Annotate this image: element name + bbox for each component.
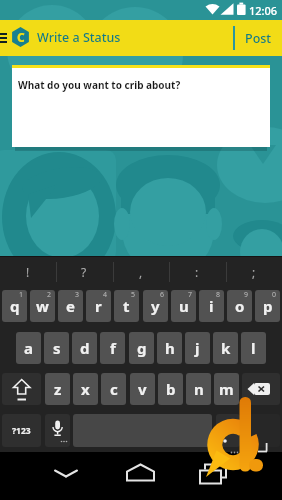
staticText: i	[209, 296, 214, 316]
button[interactable]	[195, 460, 235, 490]
button[interactable]: p	[255, 290, 280, 322]
button[interactable]: ?123	[2, 414, 41, 447]
button[interactable]	[45, 414, 70, 447]
staticText: 8	[216, 290, 221, 300]
staticText: p	[263, 296, 273, 316]
staticText: 0	[272, 290, 277, 300]
staticText: What do you want to crib about?	[18, 78, 181, 92]
staticText: ;	[252, 264, 256, 280]
button[interactable]: f	[100, 332, 125, 364]
staticText: 7	[188, 290, 193, 300]
button[interactable]: y	[143, 290, 168, 322]
button[interactable]: v	[130, 373, 155, 405]
staticText: b	[166, 379, 176, 399]
button[interactable]: a	[16, 332, 41, 364]
button[interactable]: C	[11, 27, 30, 47]
button[interactable]: q	[2, 290, 27, 322]
staticText: 5	[131, 290, 136, 300]
button[interactable]	[121, 460, 161, 490]
button[interactable]: k	[213, 332, 238, 364]
button[interactable]: b	[158, 373, 183, 405]
staticText: n	[194, 379, 204, 399]
staticText: ?	[81, 264, 87, 280]
button[interactable]: j	[185, 332, 210, 364]
button[interactable]: x	[73, 373, 98, 405]
button[interactable]	[73, 414, 212, 447]
button[interactable]: n	[186, 373, 211, 405]
staticText: !	[26, 264, 30, 280]
button[interactable]: w	[30, 290, 55, 322]
staticText: ?123	[12, 425, 31, 437]
staticText: :	[195, 264, 199, 280]
button[interactable]: r	[86, 290, 111, 322]
staticText: l	[251, 338, 256, 358]
button[interactable]: h	[157, 332, 182, 364]
button[interactable]: c	[101, 373, 126, 405]
button[interactable]: s	[44, 332, 69, 364]
staticText: c	[110, 379, 118, 399]
button[interactable]: :	[169, 258, 225, 286]
button[interactable]: o	[227, 290, 252, 322]
button[interactable]	[46, 460, 86, 490]
button[interactable]: z	[45, 373, 70, 405]
staticText: 1	[19, 290, 24, 300]
button[interactable]	[2, 373, 41, 405]
button[interactable]	[216, 414, 240, 447]
staticText: d	[80, 338, 90, 358]
staticText: g	[137, 338, 147, 358]
button[interactable]: d	[72, 332, 97, 364]
button[interactable]: e	[58, 290, 83, 322]
staticText: o	[235, 296, 245, 316]
staticText: f	[110, 338, 116, 358]
staticText: r	[95, 296, 102, 316]
button[interactable]: Post	[235, 20, 282, 56]
staticText: ,	[139, 264, 143, 280]
staticText: k	[221, 338, 231, 358]
staticText: y	[151, 296, 160, 316]
staticText: s	[53, 338, 61, 358]
staticText: a	[24, 338, 33, 358]
staticText: 6	[160, 290, 165, 300]
button[interactable]: !	[0, 258, 56, 286]
button[interactable]: ;	[226, 258, 282, 286]
button[interactable]: u	[171, 290, 196, 322]
staticText: e	[66, 296, 75, 316]
staticText: q	[10, 296, 20, 316]
staticText: 2	[47, 290, 52, 300]
button[interactable]: t	[114, 290, 139, 322]
staticText: Write a Status	[37, 29, 121, 46]
button[interactable]: l	[241, 332, 266, 364]
staticText: C	[17, 29, 25, 45]
staticText: 12:06	[249, 3, 278, 18]
staticText: x	[81, 379, 90, 399]
staticText: h	[165, 338, 175, 358]
button[interactable]	[242, 373, 280, 405]
staticText: Post	[245, 30, 272, 47]
button[interactable]: What do you want to crib about?	[12, 65, 270, 147]
staticText: m	[219, 379, 234, 399]
staticText: z	[54, 379, 62, 399]
staticText: j	[195, 338, 200, 358]
button[interactable]: i	[199, 290, 224, 322]
staticText: w	[36, 296, 49, 316]
staticText: u	[179, 296, 189, 316]
button[interactable]: g	[129, 332, 154, 364]
staticText: 4	[103, 290, 108, 300]
staticText: 3	[75, 290, 80, 300]
button[interactable]: m	[214, 373, 239, 405]
button[interactable]: ?	[56, 258, 112, 286]
button[interactable]: ,	[113, 258, 169, 286]
staticText: t	[123, 296, 130, 316]
staticText: 9	[244, 290, 249, 300]
button[interactable]	[242, 414, 280, 447]
staticText: v	[138, 379, 147, 399]
